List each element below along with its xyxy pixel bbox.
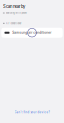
staticText: Scan nearby [3,4,25,9]
staticText: Can't find your device? [14,111,49,114]
staticText: Searching with phone [6,12,27,14]
button[interactable]: Can't find your device? [0,111,64,114]
staticText: Air conditioner [6,22,22,25]
button[interactable]: Samsung air conditioner [1,28,63,38]
staticText: Samsung air conditioner [12,31,51,35]
